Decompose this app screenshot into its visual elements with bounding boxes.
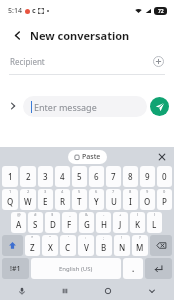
staticText: " (49, 235, 51, 240)
staticText: & (85, 212, 88, 217)
button[interactable]: Home (86, 281, 130, 300)
staticText: ? (139, 235, 141, 240)
button[interactable]: English (US) (31, 258, 121, 279)
staticText: _ (69, 212, 71, 217)
button[interactable]: . (123, 258, 143, 279)
button[interactable]: ? (132, 235, 148, 256)
button[interactable]: Send (150, 97, 169, 116)
staticText: E (43, 196, 48, 207)
button[interactable]: 2 (20, 189, 36, 210)
button[interactable]: 7 (106, 189, 121, 210)
button[interactable]: 2 (20, 166, 36, 187)
button[interactable]: 1 (2, 189, 18, 210)
staticText: 2 (27, 189, 30, 194)
staticText: D (50, 219, 56, 230)
button[interactable]: Add recipient (151, 54, 165, 68)
button[interactable]: 7 (106, 166, 121, 187)
button[interactable]: Expand options (6, 99, 20, 113)
button[interactable]: Recent apps (43, 281, 86, 300)
button[interactable]: # (28, 212, 43, 233)
button[interactable]: 8 (123, 166, 138, 187)
button[interactable]: ; (96, 235, 112, 256)
staticText: N (119, 242, 126, 253)
staticText: Paste (82, 152, 101, 162)
staticText: ; (103, 235, 105, 240)
staticText: 5 (77, 171, 82, 182)
staticText: 6 (94, 171, 99, 182)
button[interactable]: 1 (2, 166, 18, 187)
staticText: . (132, 263, 135, 274)
staticText: ! (121, 235, 123, 240)
staticText: T (77, 196, 82, 207)
staticText: 6 (95, 189, 98, 194)
staticText: @ (17, 212, 21, 217)
button[interactable]: Recipient (0, 48, 174, 74)
button[interactable]: ' (60, 235, 76, 256)
button[interactable]: Back (0, 22, 174, 48)
staticText: * (31, 235, 34, 240)
button[interactable]: 3 (38, 166, 53, 187)
staticText: J (119, 219, 122, 230)
button[interactable]: Enter (145, 258, 172, 279)
button[interactable]: 9 (140, 189, 155, 210)
staticText: 7 (112, 189, 115, 194)
button[interactable]: + (113, 212, 128, 233)
staticText: F (67, 219, 72, 230)
button[interactable]: 4 (55, 189, 70, 210)
staticText: 9 (146, 189, 149, 194)
button[interactable]: _ (62, 212, 77, 233)
staticText: ( (137, 212, 139, 217)
button[interactable]: Backspace (150, 235, 172, 256)
button[interactable]: 4 (55, 166, 70, 187)
button[interactable]: !#1 (2, 258, 29, 279)
staticText: # (34, 212, 37, 217)
staticText: c (32, 6, 36, 16)
staticText: 72 (158, 8, 164, 15)
button[interactable]: & (79, 212, 94, 233)
button[interactable]: Paste (68, 150, 107, 164)
button[interactable]: ( (130, 212, 145, 233)
button[interactable]: * (25, 235, 40, 256)
staticText: Recipient (10, 56, 45, 67)
staticText: X (48, 242, 53, 253)
button[interactable]: 6 (89, 166, 104, 187)
staticText: Q (7, 196, 14, 207)
staticText: !#1 (10, 264, 21, 274)
staticText: W (24, 196, 32, 207)
button[interactable]: Hide keyboard (130, 281, 174, 300)
staticText: 0 (163, 189, 166, 194)
staticText: C (65, 242, 71, 253)
staticText: 3 (44, 189, 47, 194)
staticText: V (84, 242, 89, 253)
button[interactable]: Shift (2, 235, 23, 256)
button[interactable]: 9 (140, 166, 155, 187)
staticText: 8 (129, 189, 132, 194)
button[interactable]: ! (114, 235, 130, 256)
staticText: 0 (162, 171, 167, 182)
button[interactable]: - (96, 212, 111, 233)
staticText: English (US) (59, 265, 93, 273)
button[interactable]: @ (11, 212, 26, 233)
button[interactable]: " (42, 235, 58, 256)
staticText: 4 (60, 171, 65, 182)
button[interactable]: 5 (72, 166, 87, 187)
button[interactable]: 0 (157, 189, 172, 210)
button[interactable]: Enter message (23, 96, 147, 117)
button[interactable]: 3 (38, 189, 53, 210)
button[interactable]: ) (147, 212, 162, 233)
staticText: B (101, 242, 107, 253)
staticText: $ (51, 212, 54, 217)
staticText: P (162, 196, 167, 207)
staticText: 1 (8, 171, 13, 182)
button[interactable]: 8 (123, 189, 138, 210)
staticText: G (84, 219, 90, 230)
button[interactable]: Back (9, 27, 25, 43)
button[interactable]: 6 (89, 189, 104, 210)
button[interactable]: Voice input (0, 281, 43, 300)
button[interactable]: 5 (72, 189, 87, 210)
staticText: A (16, 219, 22, 230)
button[interactable]: : (78, 235, 94, 256)
button[interactable]: $ (45, 212, 60, 233)
button[interactable]: Close (155, 150, 168, 163)
button[interactable]: 0 (157, 166, 172, 187)
